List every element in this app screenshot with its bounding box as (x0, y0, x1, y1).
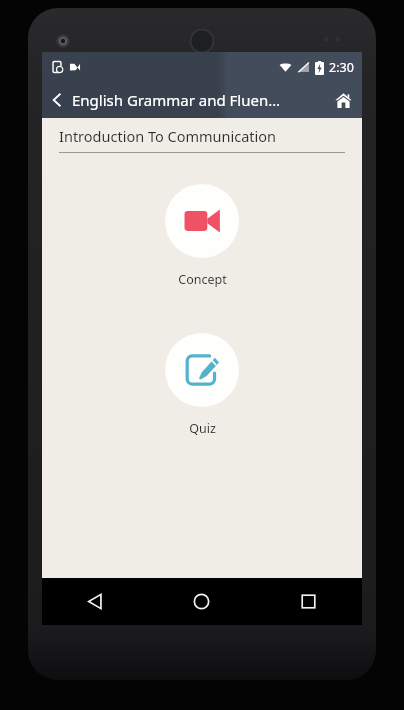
button[interactable]: Concept video (42, 184, 362, 288)
button[interactable]: Recent apps (255, 578, 362, 625)
staticText: Introduction To Communication (59, 126, 277, 146)
button[interactable]: Home (148, 578, 255, 625)
staticText: English Grammar and Fluen… (72, 90, 324, 110)
other: Concept video (165, 184, 239, 258)
button[interactable]: Back (42, 578, 148, 625)
staticText: 2:30 (329, 59, 354, 76)
staticText: Concept (178, 271, 227, 288)
button[interactable]: Quiz (42, 333, 362, 437)
other: Quiz (165, 333, 239, 407)
button[interactable]: Back (42, 82, 72, 118)
staticText: Quiz (189, 420, 216, 437)
button[interactable]: Home (324, 82, 362, 118)
